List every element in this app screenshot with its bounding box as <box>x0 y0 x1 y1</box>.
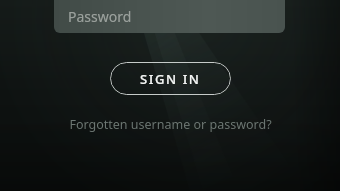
staticText: Forgotten username or password? <box>69 116 272 133</box>
staticText: Password <box>68 7 132 26</box>
button[interactable]: Forgotten username or password? <box>69 116 272 133</box>
button[interactable]: SIGN IN <box>110 62 231 95</box>
button[interactable]: Password <box>54 0 285 33</box>
staticText: SIGN IN <box>140 70 201 88</box>
